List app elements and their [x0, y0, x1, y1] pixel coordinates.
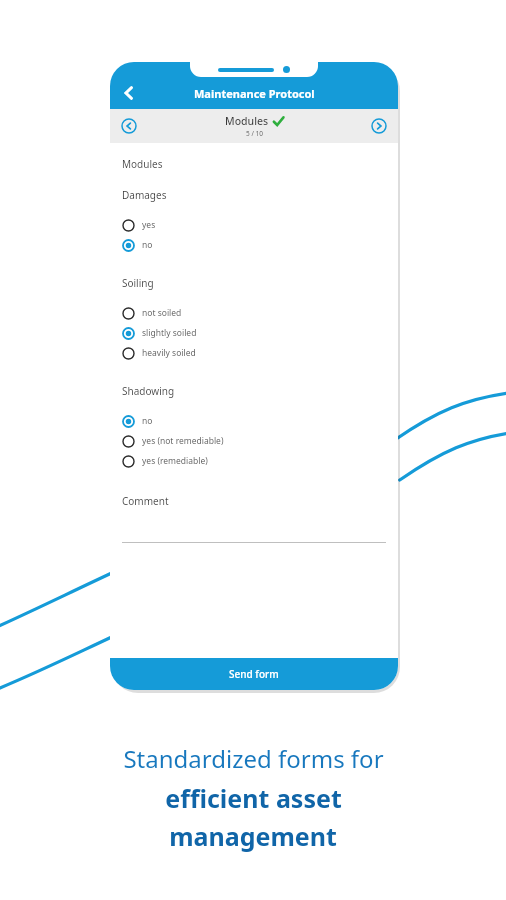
button[interactable]: no — [122, 235, 386, 255]
staticText: Modules — [122, 157, 163, 171]
staticText: efficient asset — [165, 781, 342, 815]
button[interactable]: Next section — [368, 115, 390, 137]
button[interactable]: yes — [122, 215, 386, 235]
staticText: Damages — [122, 188, 167, 202]
button[interactable]: yes (not remediable) — [122, 431, 386, 451]
staticText: Comment — [122, 494, 169, 508]
button[interactable]: Back — [116, 80, 142, 106]
button[interactable]: Previous section — [118, 115, 140, 137]
staticText: yes (not remediable) — [142, 435, 224, 447]
staticText: Send form — [229, 667, 279, 681]
staticText: Standardized forms for — [123, 742, 384, 775]
button[interactable]: no — [122, 411, 386, 431]
button[interactable]: Send form — [110, 658, 398, 690]
staticText: management — [169, 819, 337, 853]
staticText: Shadowing — [122, 384, 175, 398]
button[interactable]: slightly soiled — [122, 323, 386, 343]
staticText: no — [142, 239, 153, 251]
button[interactable]: heavily soiled — [122, 343, 386, 363]
staticText: Soiling — [122, 276, 154, 290]
staticText: 5 / 10 — [246, 129, 263, 138]
staticText: yes (remediable) — [142, 455, 208, 467]
staticText: yes — [142, 219, 156, 231]
staticText: no — [142, 415, 153, 427]
staticText: not soiled — [142, 307, 182, 319]
staticText: heavily soiled — [142, 347, 196, 359]
staticText: slightly soiled — [142, 327, 197, 339]
staticText: Modules — [225, 114, 269, 128]
button[interactable]: not soiled — [122, 303, 386, 323]
staticText: Maintenance Protocol — [194, 86, 315, 101]
button[interactable]: yes (remediable) — [122, 451, 386, 471]
